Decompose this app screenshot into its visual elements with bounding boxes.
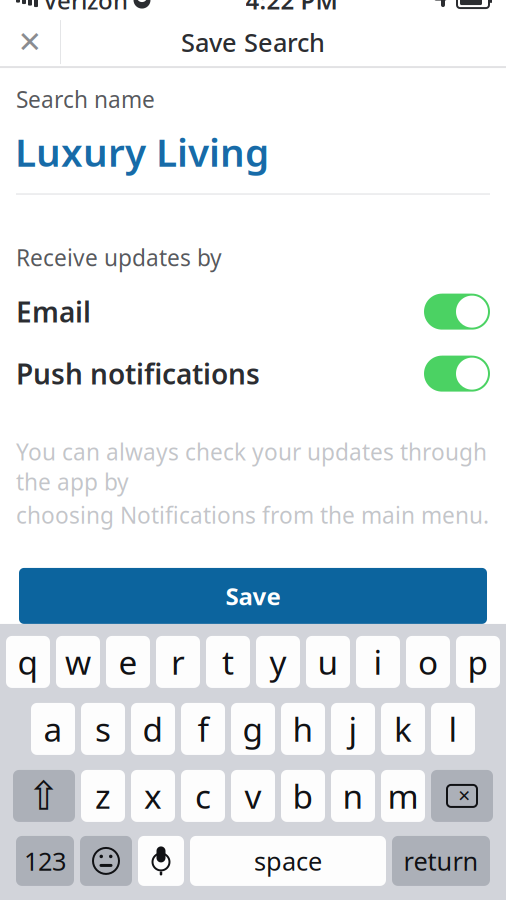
button[interactable]: Shift xyxy=(13,770,75,822)
staticText: Push notifications xyxy=(16,355,260,392)
button[interactable]: Emoji xyxy=(80,836,132,886)
staticText: 123 xyxy=(24,844,66,878)
staticText: k xyxy=(394,707,412,751)
staticText: y xyxy=(269,640,286,684)
staticText: z xyxy=(95,774,111,818)
staticText: x xyxy=(144,774,162,818)
staticText: You can always check your updates throug… xyxy=(16,437,487,497)
staticText: Verizon xyxy=(43,0,128,16)
staticText: c xyxy=(195,774,211,818)
button[interactable]: x xyxy=(131,770,175,822)
staticText: s xyxy=(95,707,111,751)
staticText: v xyxy=(244,774,261,818)
staticText: m xyxy=(387,774,418,818)
button[interactable]: space xyxy=(190,836,386,886)
button[interactable]: z xyxy=(81,770,125,822)
staticText: g xyxy=(242,707,263,751)
staticText: Save Search xyxy=(181,25,325,59)
button[interactable]: r xyxy=(156,636,200,688)
staticText: h xyxy=(292,707,313,751)
staticText: Search name xyxy=(16,84,155,114)
staticText: u xyxy=(317,640,338,684)
button[interactable]: c xyxy=(181,770,225,822)
button[interactable]: h xyxy=(281,703,325,755)
staticText: w xyxy=(65,640,91,684)
staticText: d xyxy=(142,707,163,751)
button[interactable]: g xyxy=(231,703,275,755)
button[interactable]: a xyxy=(31,703,75,755)
button[interactable]: Email xyxy=(0,293,506,331)
button[interactable]: Push notifications xyxy=(0,355,506,393)
staticText: j xyxy=(348,707,357,751)
staticText: b xyxy=(292,774,313,818)
button[interactable]: Delete xyxy=(431,770,493,822)
staticText: i xyxy=(373,640,382,684)
button[interactable]: f xyxy=(181,703,225,755)
button[interactable]: p xyxy=(456,636,500,688)
button[interactable]: return xyxy=(392,836,490,886)
staticText: f xyxy=(197,707,208,751)
button[interactable]: d xyxy=(131,703,175,755)
button[interactable]: y xyxy=(256,636,300,688)
staticText: Receive updates by xyxy=(16,242,222,273)
button[interactable]: b xyxy=(281,770,325,822)
staticText: ✕ xyxy=(17,25,42,59)
button[interactable]: v xyxy=(231,770,275,822)
button[interactable]: u xyxy=(306,636,350,688)
staticText: return xyxy=(403,844,478,878)
staticText: Luxury Living xyxy=(15,126,269,177)
staticText: Save xyxy=(225,580,280,612)
button[interactable]: w xyxy=(56,636,100,688)
button[interactable]: l xyxy=(431,703,475,755)
button[interactable]: n xyxy=(331,770,375,822)
button[interactable]: q xyxy=(6,636,50,688)
staticText: n xyxy=(342,774,363,818)
button[interactable]: Close xyxy=(0,16,60,68)
button[interactable]: j xyxy=(331,703,375,755)
staticText: ⇧ xyxy=(27,773,61,819)
staticText: 4:22 PM xyxy=(245,0,337,16)
staticText: l xyxy=(448,707,457,751)
staticText: space xyxy=(254,844,322,878)
staticText: q xyxy=(17,640,38,684)
button[interactable]: i xyxy=(356,636,400,688)
staticText: Email xyxy=(16,293,91,330)
staticText: p xyxy=(467,640,488,684)
staticText: t xyxy=(222,640,234,684)
button[interactable]: k xyxy=(381,703,425,755)
button[interactable]: Dictate xyxy=(138,836,184,886)
button[interactable]: o xyxy=(406,636,450,688)
button[interactable]: m xyxy=(381,770,425,822)
button[interactable]: e xyxy=(106,636,150,688)
staticText: ✕ xyxy=(457,787,470,805)
button[interactable]: s xyxy=(81,703,125,755)
staticText: e xyxy=(118,640,137,684)
button[interactable]: 123 xyxy=(16,836,74,886)
staticText: a xyxy=(43,707,62,751)
staticText: o xyxy=(418,640,438,684)
staticText: choosing Notifications from the main men… xyxy=(16,500,489,530)
button[interactable]: t xyxy=(206,636,250,688)
button[interactable]: Save xyxy=(19,568,487,624)
staticText: r xyxy=(171,640,185,684)
